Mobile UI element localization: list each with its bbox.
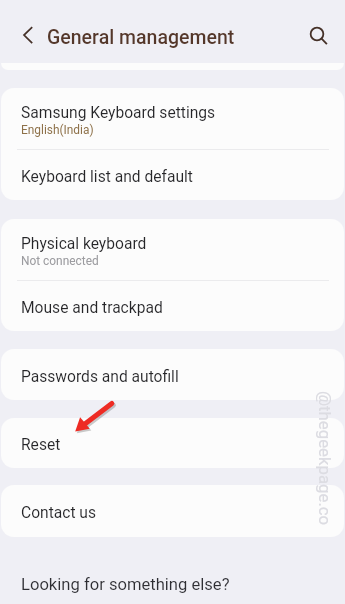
staticText: Contact us (21, 504, 97, 522)
staticText: English(India) (21, 123, 94, 137)
staticText: Looking for something else? (21, 575, 230, 594)
staticText: Physical keyboard (21, 235, 147, 253)
staticText: Mouse and trackpad (21, 299, 163, 317)
button[interactable]: Physical keyboard (1, 219, 344, 281)
button[interactable]: Reset (1, 418, 344, 468)
staticText: General management (47, 26, 235, 49)
button[interactable]: Navigate up (10, 17, 46, 53)
button[interactable]: Mouse and trackpad (1, 281, 344, 331)
button[interactable]: Search (299, 16, 335, 52)
staticText: Not connected (21, 254, 99, 268)
staticText: Samsung Keyboard settings (21, 104, 216, 122)
staticText: @thegeekpage.com (315, 391, 335, 531)
button[interactable]: Samsung Keyboard settings (1, 88, 344, 150)
button[interactable]: Keyboard list and default (1, 150, 344, 200)
staticText: Passwords and autofill (21, 368, 179, 386)
button[interactable]: Contact us (1, 485, 344, 537)
staticText: Keyboard list and default (21, 168, 193, 186)
staticText: Reset (21, 436, 61, 454)
button[interactable]: Passwords and autofill (1, 349, 344, 400)
